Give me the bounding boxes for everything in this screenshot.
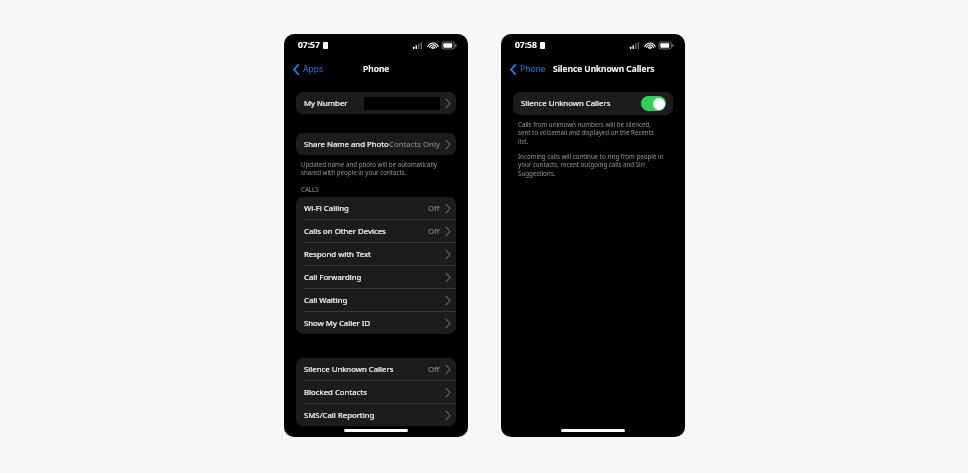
button[interactable]: Silence Unknown Callers <box>296 358 456 381</box>
staticText: CALLS <box>301 185 319 193</box>
staticText: Off <box>428 203 440 214</box>
staticText: Silence Unknown Callers <box>521 98 611 109</box>
staticText: Off <box>428 226 440 237</box>
button[interactable]: Silence Unknown Callers <box>521 92 666 115</box>
button[interactable]: Apps <box>292 61 324 77</box>
staticText: SMS/Call Reporting <box>304 410 375 421</box>
staticText: Apps <box>303 63 323 75</box>
staticText: 07:58 <box>515 39 537 51</box>
staticText: Silence Unknown Callers <box>553 63 655 75</box>
staticText: Share Name and Photo <box>304 139 389 150</box>
staticText: Calls on Other Devices <box>304 226 386 237</box>
button[interactable]: Show My Caller ID <box>296 312 456 334</box>
staticText: Silence Unknown Callers <box>304 364 394 375</box>
button[interactable]: SMS/Call Reporting <box>296 404 456 426</box>
staticText: My Number <box>304 98 348 109</box>
staticText: Incoming calls will continue to ring fro… <box>518 152 665 177</box>
button[interactable]: Phone <box>509 61 547 77</box>
button[interactable]: My Number <box>296 92 456 114</box>
button[interactable]: Wi-Fi Calling <box>296 197 456 220</box>
button[interactable]: Respond with Text <box>296 243 456 266</box>
staticText: Phone <box>520 63 546 75</box>
other: Silence Unknown Callers toggle, on <box>641 96 666 111</box>
staticText: Phone <box>363 63 390 75</box>
button[interactable]: Share Name and Photo <box>296 133 456 155</box>
button[interactable]: Blocked Contacts <box>296 381 456 404</box>
button[interactable]: Calls on Other Devices <box>296 220 456 243</box>
staticText: Contacts Only <box>389 139 440 150</box>
staticText: 07:57 <box>298 39 320 51</box>
staticText: Updated name and photo will be automatic… <box>301 160 448 176</box>
button[interactable]: Call Waiting <box>296 289 456 312</box>
staticText: Wi-Fi Calling <box>304 203 349 214</box>
staticText: Call Forwarding <box>304 272 362 283</box>
staticText: Calls from unknown numbers will be silen… <box>518 120 665 145</box>
staticText: Blocked Contacts <box>304 387 367 398</box>
staticText: Call Waiting <box>304 295 348 306</box>
staticText: Respond with Text <box>304 249 371 260</box>
staticText: Off <box>428 364 440 375</box>
staticText: Show My Caller ID <box>304 318 371 329</box>
button[interactable]: Call Forwarding <box>296 266 456 289</box>
